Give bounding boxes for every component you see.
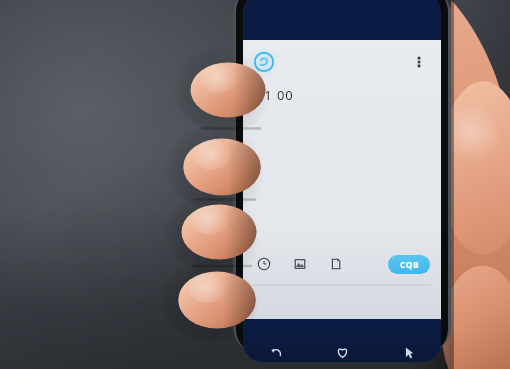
button[interactable]: Favourites xyxy=(309,328,375,362)
button[interactable]: Gallery xyxy=(290,254,310,274)
button[interactable]: More options xyxy=(408,51,430,73)
button[interactable]: Back xyxy=(243,328,309,362)
staticText: 01 00 xyxy=(256,86,294,104)
button[interactable]: CQB xyxy=(388,255,430,274)
staticText: CQB xyxy=(400,259,419,271)
button[interactable]: Timer xyxy=(254,254,274,274)
button[interactable]: Profile xyxy=(375,328,441,362)
button[interactable]: Brand logo xyxy=(254,52,274,72)
button[interactable]: Note xyxy=(326,254,346,274)
